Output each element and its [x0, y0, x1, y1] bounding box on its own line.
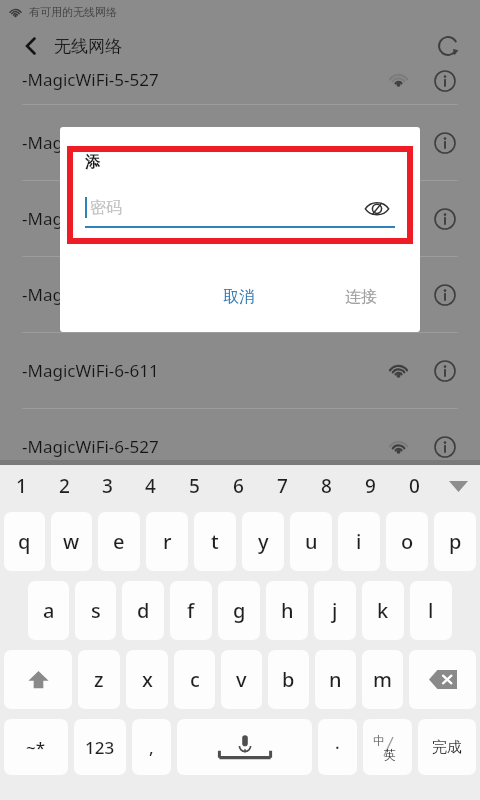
button[interactable]: t — [194, 512, 236, 571]
staticText: q — [18, 528, 31, 555]
button[interactable]: 4 — [129, 465, 172, 507]
staticText: a — [43, 597, 55, 624]
staticText: 2 — [59, 473, 70, 499]
button[interactable]: 网络详情 — [432, 434, 458, 460]
button[interactable]: r — [146, 512, 188, 571]
button[interactable]: 9 — [348, 465, 392, 507]
button[interactable]: 收起键盘 — [436, 465, 480, 507]
staticText: -MagicWiFi-5-528 — [22, 131, 387, 154]
button[interactable]: 取消 — [208, 279, 270, 315]
button[interactable]: 6 — [216, 465, 260, 507]
staticText: -MagicWiFi-6-611 — [22, 359, 387, 382]
button[interactable]: w — [51, 512, 92, 571]
button[interactable]: p — [434, 512, 476, 571]
button[interactable]: g — [218, 581, 260, 640]
button[interactable]: 空格 — [177, 719, 312, 775]
button[interactable]: i — [338, 512, 380, 571]
staticText: e — [113, 528, 125, 555]
button[interactable]: , — [132, 719, 171, 775]
button[interactable]: f — [170, 581, 212, 640]
staticText: 3 — [102, 473, 113, 499]
staticText: 添 — [85, 153, 100, 172]
button[interactable]: 网络详情 — [432, 68, 458, 94]
button[interactable]: 大写切换 — [4, 650, 72, 709]
staticText: 6 — [233, 473, 244, 499]
button[interactable]: b — [268, 650, 309, 709]
button[interactable]: u — [290, 512, 332, 571]
staticText: n — [329, 666, 342, 693]
button[interactable]: e — [98, 512, 140, 571]
button[interactable]: 8 — [304, 465, 348, 507]
staticText: 9 — [365, 473, 376, 499]
button[interactable]: -MagicWiFi-5-611 — [0, 181, 480, 257]
button[interactable]: -MagicWiFi-6-611 — [0, 333, 480, 409]
button[interactable]: 网络详情 — [432, 282, 458, 308]
staticText: 5 — [189, 473, 200, 499]
button[interactable]: 中英切换 — [363, 719, 412, 775]
staticText: y — [258, 528, 269, 555]
button[interactable]: 123 — [74, 719, 126, 775]
button[interactable]: v — [221, 650, 262, 709]
staticText: l — [428, 597, 434, 624]
button[interactable]: · — [318, 719, 357, 775]
staticText: v — [236, 666, 247, 693]
staticText: 取消 — [223, 287, 255, 307]
button[interactable]: -MagicWiFi-5-527 — [0, 68, 480, 105]
button[interactable]: y — [242, 512, 284, 571]
staticText: u — [305, 528, 318, 555]
staticText: p — [449, 528, 462, 555]
button[interactable]: d — [122, 581, 164, 640]
button[interactable]: 5 — [172, 465, 216, 507]
staticText: 4 — [145, 473, 156, 499]
staticText: 0 — [409, 473, 420, 499]
staticText: 连接 — [345, 287, 377, 307]
staticText: -MagicWiFi-6-527 — [22, 435, 387, 458]
button[interactable]: h — [266, 581, 308, 640]
button[interactable]: 删除 — [409, 650, 476, 709]
button[interactable]: o — [386, 512, 428, 571]
staticText: 有可用的无线网络 — [29, 5, 117, 19]
button[interactable]: c — [174, 650, 215, 709]
button[interactable]: k — [362, 581, 404, 640]
staticText: k — [377, 597, 389, 624]
staticText: -MagicWiFi-5-527 — [22, 68, 387, 91]
button[interactable]: 网络详情 — [432, 206, 458, 232]
button[interactable]: 刷新 — [430, 28, 466, 64]
button[interactable]: ~* — [4, 719, 68, 775]
button[interactable]: l — [410, 581, 452, 640]
button[interactable]: 完成 — [418, 719, 476, 775]
button[interactable]: 网络详情 — [432, 358, 458, 384]
button[interactable]: 7 — [260, 465, 304, 507]
staticText: m — [373, 666, 392, 693]
staticText: g — [233, 597, 246, 624]
button[interactable]: 返回 — [14, 29, 48, 63]
button[interactable]: 网络详情 — [432, 130, 458, 156]
staticText: ~* — [26, 736, 46, 759]
staticText: · — [335, 736, 340, 759]
button[interactable]: q — [4, 512, 45, 571]
staticText: d — [137, 597, 150, 624]
button[interactable]: 连接 — [330, 279, 392, 315]
button[interactable]: -MagicWiFi-6-527 — [0, 409, 480, 485]
staticText: o — [401, 528, 414, 555]
button[interactable]: 1 — [0, 465, 43, 507]
button[interactable]: z — [78, 650, 120, 709]
button[interactable]: j — [314, 581, 356, 640]
staticText: f — [187, 597, 195, 624]
staticText: z — [94, 666, 104, 693]
button[interactable]: 3 — [86, 465, 129, 507]
button[interactable]: m — [362, 650, 403, 709]
staticText: -MagicWiFi-5-611 — [22, 207, 387, 230]
button[interactable]: n — [315, 650, 356, 709]
button[interactable]: 显示密码 — [359, 194, 395, 222]
staticText: c — [190, 666, 200, 693]
button[interactable]: 0 — [392, 465, 436, 507]
button[interactable]: s — [75, 581, 116, 640]
button[interactable]: -MagicWiFi-5-526 — [0, 257, 480, 333]
staticText: j — [332, 597, 338, 624]
button[interactable]: a — [28, 581, 69, 640]
staticText: 无线网络 — [54, 36, 122, 57]
button[interactable]: -MagicWiFi-5-528 — [0, 105, 480, 181]
button[interactable]: 2 — [43, 465, 86, 507]
button[interactable]: x — [126, 650, 168, 709]
